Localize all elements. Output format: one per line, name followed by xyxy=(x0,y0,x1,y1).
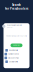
staticText: Search xyxy=(12,3,21,7)
staticText: For Preschoolers xyxy=(5,7,28,10)
staticText: Discovery Play xyxy=(8,57,19,59)
staticText: Preschool Program xyxy=(7,24,22,26)
staticText: Social Growth xyxy=(9,61,18,63)
staticText: Find the right class for your child xyxy=(6,35,27,37)
staticText: Reading Skills xyxy=(9,49,18,51)
staticText: Ages 3 - 5 xyxy=(7,26,13,28)
staticText: Number Sense xyxy=(8,53,19,55)
staticText: Get Started xyxy=(13,44,20,46)
button[interactable]: Get Started xyxy=(10,43,22,47)
